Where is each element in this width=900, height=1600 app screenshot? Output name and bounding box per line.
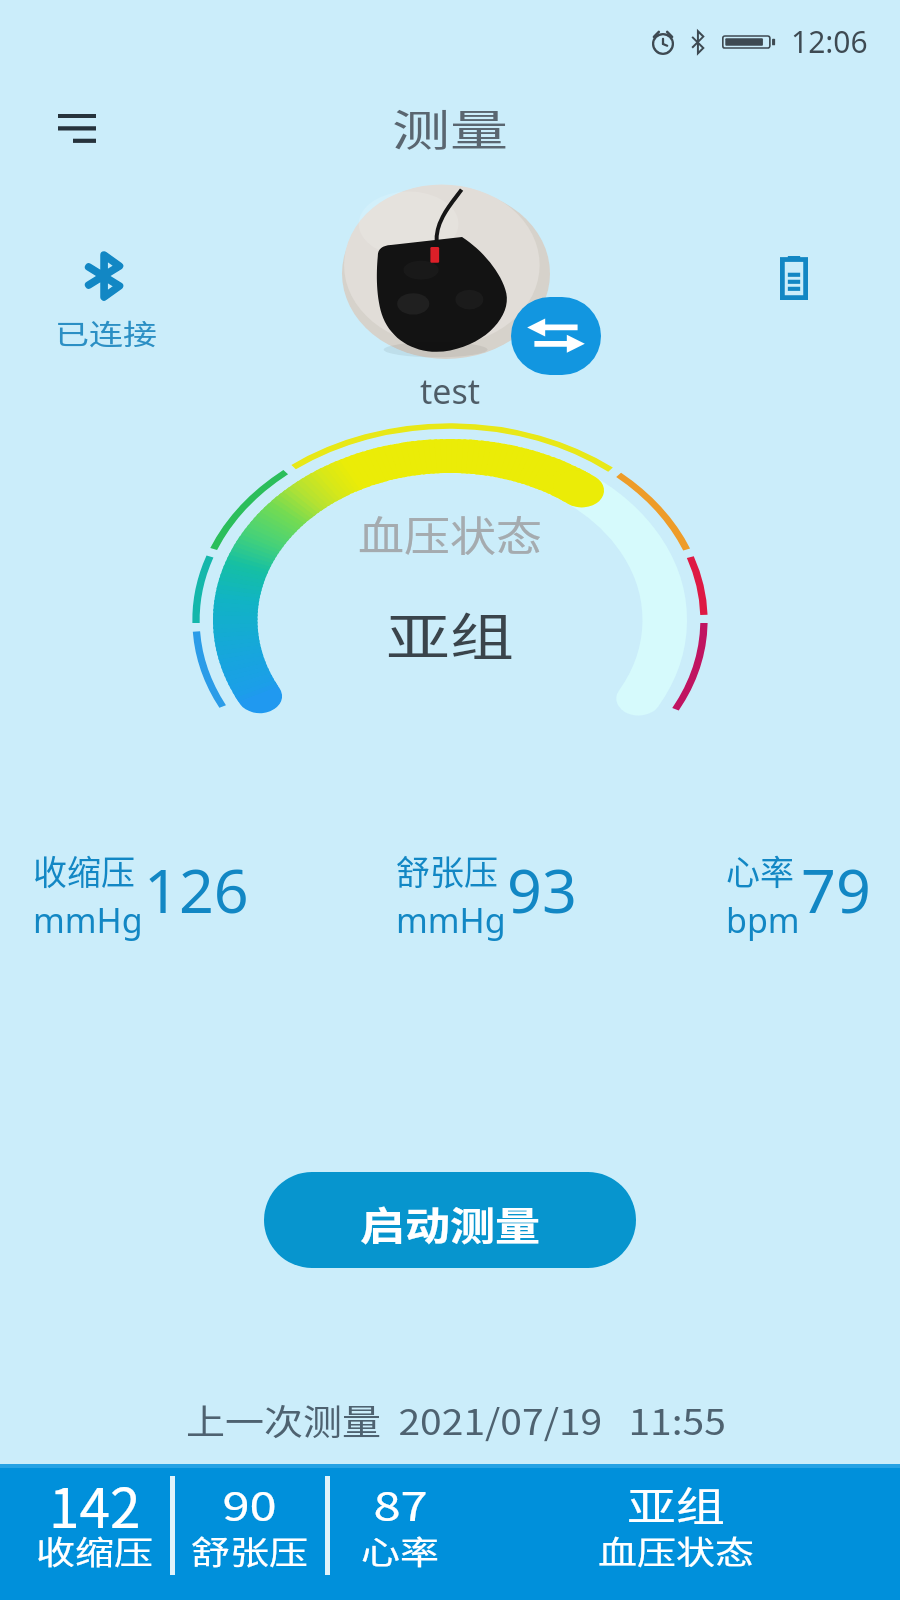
button[interactable]: 已连接 — [55, 251, 157, 358]
staticText: mmHg — [33, 897, 143, 943]
staticText: 87 — [373, 1475, 429, 1533]
staticText: 心率 — [361, 1527, 440, 1573]
staticText: 心率 — [726, 846, 794, 895]
staticText: 亚组 — [627, 1475, 726, 1533]
button[interactable]: 87 — [310, 1464, 490, 1600]
staticText: 12:06 — [791, 21, 868, 62]
staticText: 亚组 — [386, 596, 514, 671]
staticText: 血压状态 — [598, 1527, 755, 1573]
staticText: bpm — [726, 897, 800, 943]
staticText: 93 — [507, 848, 577, 931]
staticText: 79 — [801, 848, 871, 931]
staticText: 142 — [49, 1464, 141, 1544]
staticText: 启动测量 — [360, 1196, 541, 1251]
button[interactable]: 亚组 — [586, 1464, 766, 1600]
staticText: 上一次测量 2021/07/19 11:55 — [186, 1395, 726, 1445]
button[interactable]: 启动测量 — [264, 1172, 636, 1268]
button[interactable]: Menu — [40, 95, 110, 165]
staticText: 舒张压 — [191, 1527, 309, 1573]
staticText: 已连接 — [55, 313, 157, 354]
button[interactable]: Switch device — [511, 297, 601, 375]
staticText: 收缩压 — [33, 846, 135, 895]
staticText: 测量 — [392, 96, 509, 156]
staticText: 90 — [222, 1475, 278, 1533]
staticText: test — [420, 368, 481, 414]
button[interactable]: 90 — [160, 1464, 340, 1600]
staticText: mmHg — [396, 897, 506, 943]
staticText: 收缩压 — [36, 1527, 154, 1573]
staticText: 126 — [144, 848, 249, 931]
staticText: 血压状态 — [358, 503, 542, 564]
staticText: 舒张压 — [396, 846, 498, 895]
button[interactable]: 142 — [5, 1464, 185, 1600]
